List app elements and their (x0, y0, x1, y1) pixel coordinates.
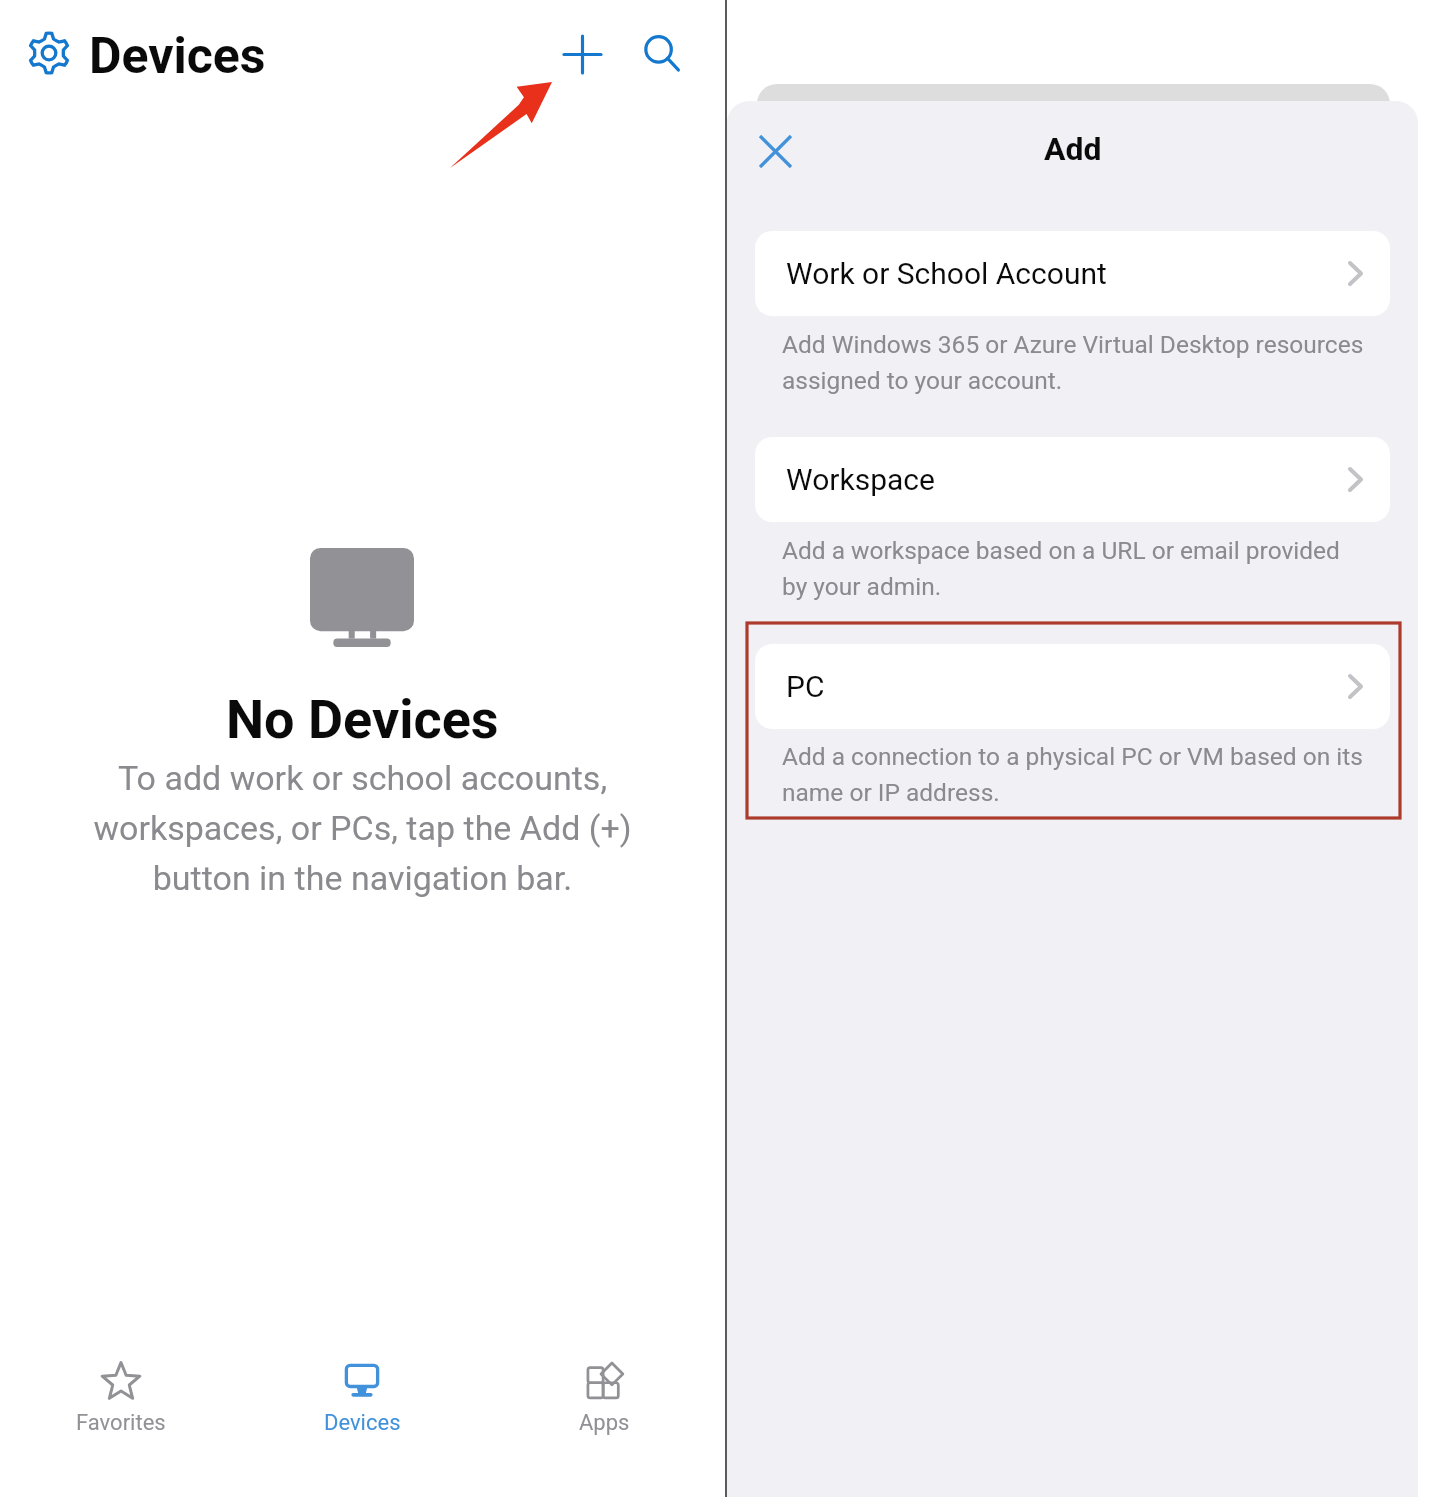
staticText: Devices (324, 1410, 401, 1436)
staticText: Devices (89, 27, 266, 86)
button[interactable]: Favorites (0, 1352, 241, 1442)
staticText: Add a connection to a physical PC or VM … (782, 742, 1392, 806)
staticText: No Devices (226, 688, 499, 751)
staticText: To add work or school accounts, workspac… (93, 758, 632, 898)
staticText: Favorites (76, 1410, 166, 1436)
button[interactable]: Work or School Account (755, 231, 1390, 316)
staticText: Work or School Account (786, 256, 1107, 291)
button[interactable]: PC (755, 644, 1390, 729)
button[interactable]: Devices (241, 1352, 483, 1442)
staticText: Add Windows 365 or Azure Virtual Desktop… (782, 330, 1392, 394)
staticText: Workspace (786, 462, 935, 497)
staticText: PC (786, 669, 825, 704)
button[interactable]: Apps (483, 1352, 725, 1442)
button[interactable]: Workspace (755, 437, 1390, 522)
button[interactable]: Search (634, 26, 690, 82)
staticText: Add (1044, 130, 1102, 168)
staticText: Add a workspace based on a URL or email … (782, 536, 1392, 600)
button[interactable]: Add (554, 26, 610, 82)
staticText: Apps (579, 1410, 630, 1436)
button[interactable]: Settings (24, 28, 74, 78)
button[interactable]: Close (749, 125, 801, 177)
